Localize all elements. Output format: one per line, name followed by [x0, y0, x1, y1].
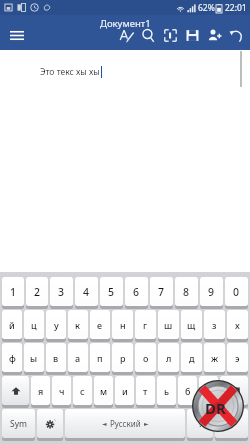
- button[interactable]: й: [2, 310, 22, 339]
- staticText: 62%: [198, 2, 215, 14]
- button[interactable]: т: [136, 376, 155, 405]
- staticText: л: [166, 352, 172, 364]
- button[interactable]: Key: [215, 409, 248, 438]
- staticText: з: [212, 319, 217, 331]
- staticText: ◄: [102, 420, 107, 427]
- staticText: ф: [9, 352, 16, 364]
- button[interactable]: Search: [137, 22, 159, 48]
- button[interactable]: Dr.Web: [192, 380, 244, 432]
- button[interactable]: ы: [24, 343, 44, 372]
- button[interactable]: у: [46, 310, 66, 339]
- staticText: ц: [31, 319, 37, 331]
- staticText: а: [75, 352, 81, 364]
- button[interactable]: 9: [200, 277, 223, 306]
- button[interactable]: л: [158, 343, 179, 372]
- button[interactable]: к: [68, 310, 88, 339]
- staticText: ч: [59, 385, 65, 397]
- button[interactable]: я: [31, 376, 50, 405]
- button[interactable]: д: [181, 343, 202, 372]
- button[interactable]: г: [135, 310, 156, 339]
- button[interactable]: Key: [220, 376, 248, 405]
- staticText: 2: [34, 285, 41, 299]
- button[interactable]: .: [187, 409, 213, 438]
- staticText: э: [235, 352, 240, 364]
- button[interactable]: Key: [65, 409, 185, 438]
- button[interactable]: Key: [37, 409, 63, 438]
- button[interactable]: ф: [2, 343, 22, 372]
- button[interactable]: с: [73, 376, 92, 405]
- staticText: й: [9, 319, 15, 331]
- staticText: г: [143, 319, 148, 331]
- staticText: 3: [58, 285, 65, 299]
- button[interactable]: 4: [75, 277, 98, 306]
- button[interactable]: р: [112, 343, 133, 372]
- button[interactable]: х: [227, 310, 248, 339]
- staticText: е: [97, 319, 103, 331]
- staticText: 0: [233, 285, 240, 299]
- staticText: ы: [30, 352, 38, 364]
- button[interactable]: ц: [24, 310, 44, 339]
- button[interactable]: з: [204, 310, 225, 339]
- button[interactable]: Undo: [225, 22, 247, 48]
- staticText: 1: [10, 285, 17, 299]
- button[interactable]: 3: [50, 277, 73, 306]
- button[interactable]: Sym: [2, 409, 35, 438]
- button[interactable]: 6: [125, 277, 148, 306]
- button[interactable]: п: [90, 343, 110, 372]
- staticText: м: [100, 385, 108, 397]
- button[interactable]: 5: [100, 277, 123, 306]
- staticText: DR: [205, 398, 226, 418]
- button[interactable]: 7: [150, 277, 173, 306]
- staticText: с: [80, 385, 85, 397]
- button[interactable]: о: [135, 343, 156, 372]
- staticText: 7: [158, 285, 165, 299]
- staticText: 22:01: [225, 2, 247, 14]
- button[interactable]: ь: [157, 376, 176, 405]
- button[interactable]: ш: [158, 310, 179, 339]
- button[interactable]: 2: [26, 277, 48, 306]
- button[interactable]: э: [227, 343, 248, 372]
- button[interactable]: в: [46, 343, 66, 372]
- staticText: Документ1: [100, 17, 151, 30]
- button[interactable]: Select: [159, 22, 181, 48]
- staticText: 5: [108, 285, 115, 299]
- staticText: 6: [133, 285, 140, 299]
- button[interactable]: б: [178, 376, 197, 405]
- staticText: т: [143, 385, 148, 397]
- button[interactable]: е: [90, 310, 110, 339]
- button[interactable]: м: [94, 376, 113, 405]
- button[interactable]: ж: [204, 343, 225, 372]
- staticText: у: [54, 319, 59, 331]
- button[interactable]: и: [115, 376, 134, 405]
- staticText: 8: [183, 285, 190, 299]
- button[interactable]: Format text: [115, 22, 137, 48]
- button[interactable]: 0: [225, 277, 248, 306]
- staticText: я: [38, 385, 44, 397]
- button[interactable]: Save: [181, 22, 203, 48]
- button[interactable]: н: [112, 310, 133, 339]
- button[interactable]: Share with people: [203, 22, 225, 48]
- button[interactable]: а: [68, 343, 88, 372]
- button[interactable]: Menu: [6, 24, 28, 46]
- staticText: Это текс хы хы: [40, 66, 100, 78]
- staticText: ю: [205, 385, 213, 397]
- staticText: к: [75, 319, 81, 331]
- button[interactable]: ч: [52, 376, 71, 405]
- staticText: о: [143, 352, 149, 364]
- staticText: Sym: [10, 418, 27, 430]
- button[interactable]: щ: [181, 310, 202, 339]
- staticText: щ: [187, 319, 196, 331]
- button[interactable]: 8: [175, 277, 198, 306]
- staticText: в: [53, 352, 59, 364]
- staticText: х: [235, 319, 240, 331]
- staticText: 4: [83, 285, 90, 299]
- staticText: ж: [211, 352, 219, 364]
- button[interactable]: ю: [199, 376, 218, 405]
- staticText: Русский: [110, 418, 141, 429]
- staticText: .: [199, 417, 202, 430]
- button[interactable]: 1: [2, 277, 24, 306]
- button[interactable]: Key: [2, 376, 29, 405]
- staticText: б: [185, 385, 191, 397]
- staticText: п: [97, 352, 103, 364]
- staticText: и: [122, 385, 128, 397]
